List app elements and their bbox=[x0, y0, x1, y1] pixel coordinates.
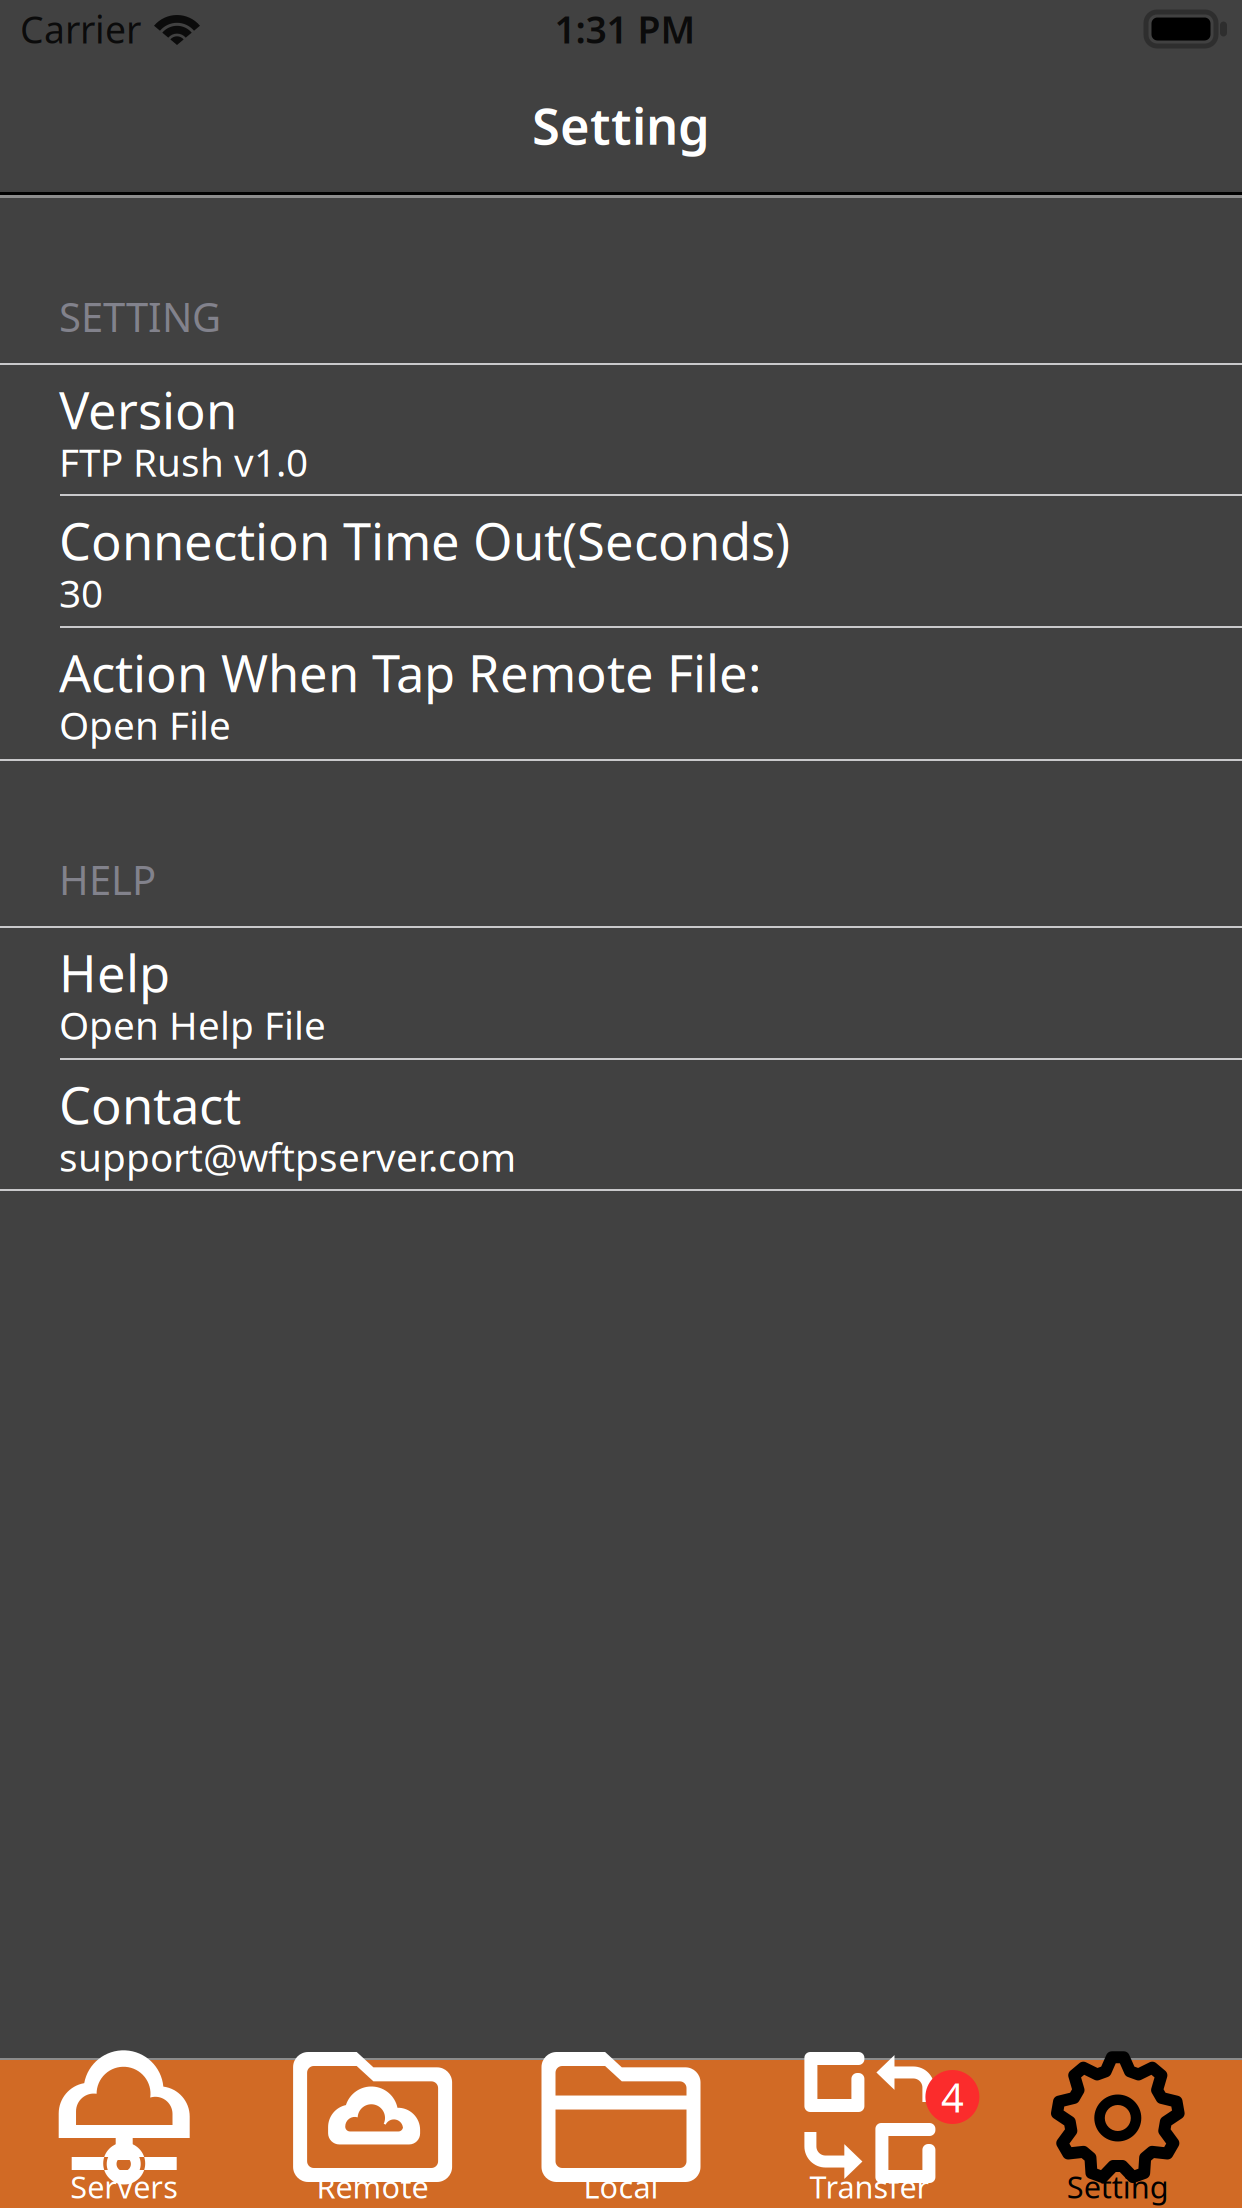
staticText: support@wftpserver.com bbox=[59, 1131, 516, 1182]
staticText: Open Help File bbox=[59, 999, 326, 1050]
button[interactable]: Setting bbox=[994, 2060, 1242, 2208]
staticText: Setting bbox=[532, 91, 710, 159]
staticText: Carrier bbox=[20, 4, 141, 54]
staticText: Contact bbox=[59, 1071, 241, 1138]
staticText: FTP Rush v1.0 bbox=[59, 436, 308, 487]
staticText: Transfer bbox=[809, 2166, 929, 2207]
staticText: Version bbox=[59, 376, 237, 443]
staticText: Open File bbox=[59, 699, 231, 750]
button[interactable]: Local bbox=[497, 2060, 745, 2208]
staticText: Help bbox=[59, 939, 170, 1006]
staticText: Servers bbox=[70, 2166, 178, 2207]
staticText: Setting bbox=[1067, 2166, 1169, 2207]
staticText: Remote bbox=[317, 2166, 429, 2207]
button[interactable]: Contact bbox=[0, 1060, 1242, 1191]
button[interactable]: Help bbox=[0, 928, 1242, 1060]
button[interactable]: Version bbox=[0, 365, 1242, 496]
button[interactable]: Connection Time Out(Seconds) bbox=[0, 496, 1242, 628]
staticText: Local bbox=[583, 2166, 658, 2207]
staticText: Action When Tap Remote File: bbox=[59, 639, 762, 706]
staticText: 30 bbox=[59, 567, 103, 618]
button[interactable]: Servers bbox=[0, 2060, 248, 2208]
button[interactable]: Remote bbox=[248, 2060, 497, 2208]
staticText: Connection Time Out(Seconds) bbox=[59, 507, 790, 574]
staticText: 4 bbox=[941, 2070, 964, 2123]
staticText: 1:31 PM bbox=[554, 4, 695, 54]
staticText: SETTING bbox=[59, 290, 221, 343]
button[interactable]: Action When Tap Remote File: bbox=[0, 628, 1242, 761]
staticText: HELP bbox=[59, 853, 156, 906]
button[interactable]: 4 bbox=[745, 2060, 994, 2208]
